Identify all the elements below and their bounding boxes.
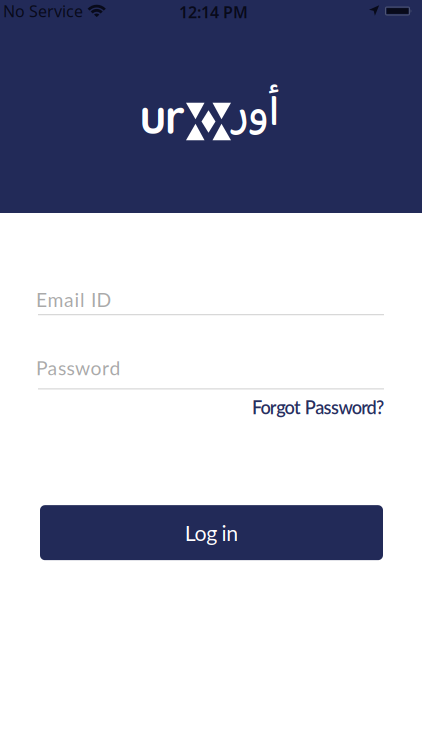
staticText: Email ID	[36, 288, 111, 311]
staticText: Log in	[185, 520, 238, 545]
staticText: Forgot Password?	[252, 396, 384, 418]
staticText: 12:14 PM	[179, 1, 248, 23]
staticText: أور	[232, 79, 279, 152]
staticText: Password	[36, 356, 120, 379]
staticText: No Service	[3, 0, 83, 22]
staticText: ur	[139, 87, 185, 145]
